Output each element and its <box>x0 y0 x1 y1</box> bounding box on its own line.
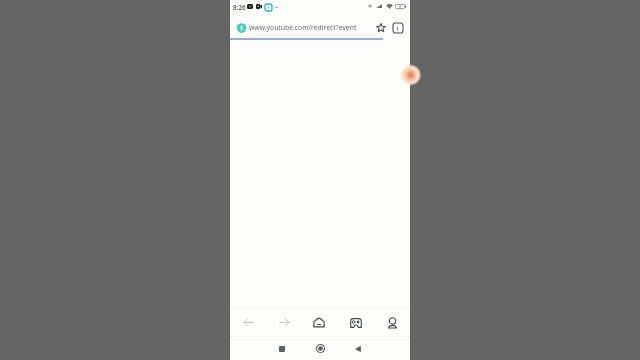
staticText: 1 <box>396 25 400 32</box>
button[interactable]: Games <box>340 309 372 336</box>
button[interactable]: Home <box>308 337 332 360</box>
button[interactable]: Recents <box>270 337 294 360</box>
button[interactable]: Search or type web address <box>234 19 372 37</box>
button[interactable]: Forward <box>268 309 300 336</box>
button[interactable]: Bookmark <box>376 23 386 33</box>
button[interactable]: Profile <box>376 309 408 336</box>
button[interactable]: Back <box>346 337 370 360</box>
staticText: www.youtube.com/redirect?event <box>249 23 357 32</box>
staticText: 8:26 <box>233 3 246 12</box>
button[interactable]: Home <box>303 309 335 336</box>
button[interactable]: Back <box>232 309 264 336</box>
button[interactable]: Tabs <box>393 23 403 33</box>
